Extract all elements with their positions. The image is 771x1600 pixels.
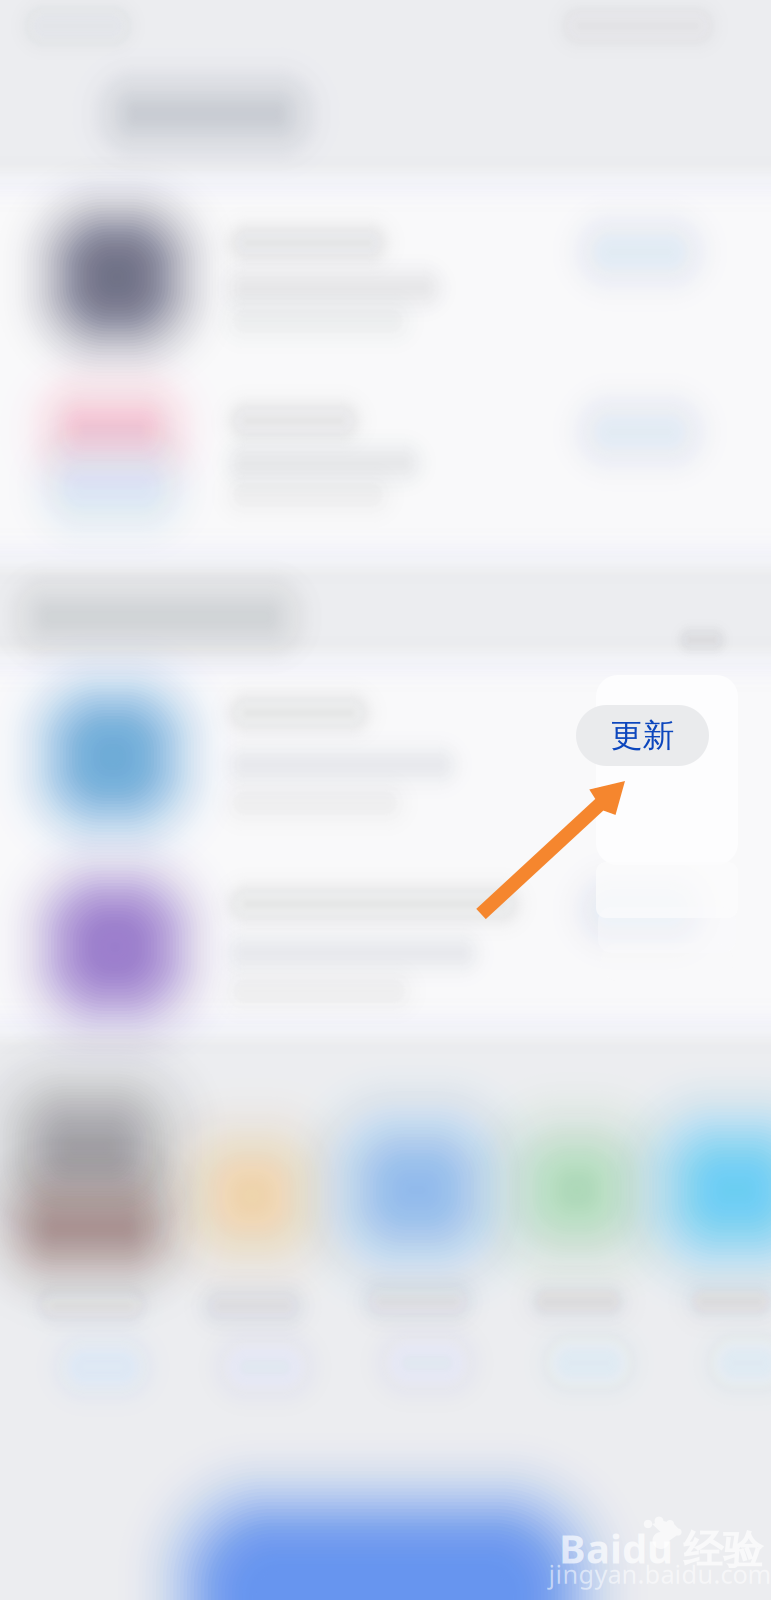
- staticText: jingyan.baidu.com: [548, 1557, 771, 1591]
- staticText: Baidu 经验: [559, 1521, 763, 1575]
- staticText: 更新: [610, 716, 674, 755]
- button[interactable]: 更新: [576, 705, 709, 766]
